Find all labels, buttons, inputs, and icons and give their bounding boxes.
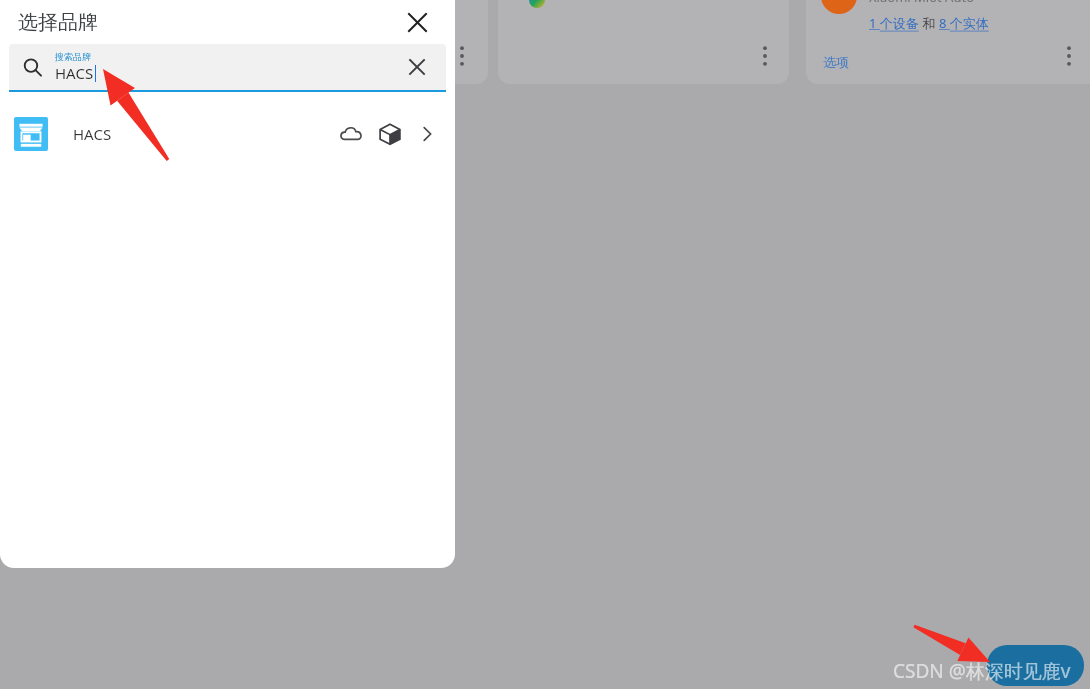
button[interactable]: More options bbox=[753, 42, 777, 70]
staticText: HACS bbox=[73, 124, 112, 144]
button[interactable] bbox=[0, 0, 488, 84]
staticText: 和 bbox=[919, 14, 939, 32]
staticText: CSDN @林深时见鹿v bbox=[893, 658, 1071, 684]
staticText: Xiaomi Miot Auto bbox=[869, 0, 975, 6]
button[interactable]: 选项 bbox=[820, 52, 852, 72]
staticText: 选项 bbox=[823, 54, 849, 70]
button[interactable]: Clear search bbox=[397, 47, 437, 87]
other: Cloud bbox=[339, 122, 363, 146]
button[interactable]: 1 个设备 bbox=[869, 14, 919, 32]
button[interactable]: Add integration bbox=[987, 645, 1084, 686]
staticText: HACS bbox=[55, 63, 94, 83]
button[interactable]: HACS bbox=[0, 104, 455, 164]
staticText: 选择品牌 bbox=[18, 10, 98, 35]
button[interactable] bbox=[498, 0, 789, 84]
button[interactable]: Close bbox=[395, 0, 439, 44]
staticText: 搜索品牌 bbox=[55, 51, 91, 62]
button[interactable]: More options bbox=[450, 42, 474, 70]
other: Open bbox=[417, 124, 437, 144]
button[interactable]: 搜索品牌 bbox=[9, 44, 446, 90]
button[interactable]: 8 个实体 bbox=[939, 14, 989, 32]
button[interactable] bbox=[806, 0, 1090, 84]
button[interactable]: More options bbox=[1057, 42, 1081, 70]
other: Package bbox=[379, 123, 401, 145]
